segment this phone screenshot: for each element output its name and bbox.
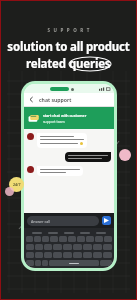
- button[interactable]: start chat with customer: [24, 107, 114, 129]
- button[interactable]: Key: [68, 236, 76, 242]
- button[interactable]: Symbols: [26, 260, 34, 266]
- button[interactable]: Key: [104, 236, 112, 242]
- staticText: related: [26, 56, 69, 72]
- button[interactable]: Key: [93, 252, 102, 258]
- button[interactable]: Key: [93, 244, 102, 250]
- button[interactable]: Key: [26, 252, 34, 258]
- button[interactable]: Key: [103, 252, 112, 258]
- button[interactable]: Key: [26, 244, 34, 250]
- staticText: 24/7: [13, 182, 21, 187]
- button[interactable]: Key: [59, 236, 67, 242]
- button[interactable]: Send: [102, 216, 111, 225]
- staticText: start chat with customer: [43, 113, 87, 118]
- button[interactable]: Key: [53, 252, 62, 258]
- button[interactable]: Key: [95, 236, 103, 242]
- button[interactable]: Key: [83, 252, 92, 258]
- button[interactable]: Key: [44, 252, 52, 258]
- button[interactable]: Key: [77, 236, 85, 242]
- button[interactable]: Emoji: [35, 260, 41, 266]
- staticText: queries: [69, 56, 111, 72]
- staticText: chat support: [39, 96, 72, 103]
- button[interactable]: Key: [34, 236, 41, 242]
- button[interactable]: Key: [63, 244, 72, 250]
- button[interactable]: Enter: [100, 260, 112, 266]
- button[interactable]: Key: [83, 244, 92, 250]
- button[interactable]: Key: [50, 236, 58, 242]
- staticText: Answer call: [31, 219, 51, 224]
- button[interactable]: Answer call: [27, 216, 99, 226]
- button[interactable]: Key: [86, 236, 94, 242]
- button[interactable]: Key: [42, 236, 49, 242]
- button[interactable]: Key: [63, 252, 72, 258]
- button[interactable]: Key: [26, 236, 33, 242]
- button[interactable]: Key: [53, 244, 62, 250]
- button[interactable]: Back: [27, 95, 36, 104]
- button[interactable]: Key: [73, 252, 82, 258]
- button[interactable]: Key: [44, 244, 52, 250]
- button[interactable]: Settings: [42, 260, 48, 266]
- staticText: S U P P O R T: [47, 27, 91, 33]
- button[interactable]: Key: [103, 244, 112, 250]
- button[interactable]: Key: [35, 244, 43, 250]
- button[interactable]: [49, 260, 99, 266]
- staticText: support team: [43, 119, 65, 124]
- button[interactable]: Key: [35, 252, 43, 258]
- staticText: solution to all product: [7, 39, 130, 55]
- button[interactable]: Key: [73, 244, 82, 250]
